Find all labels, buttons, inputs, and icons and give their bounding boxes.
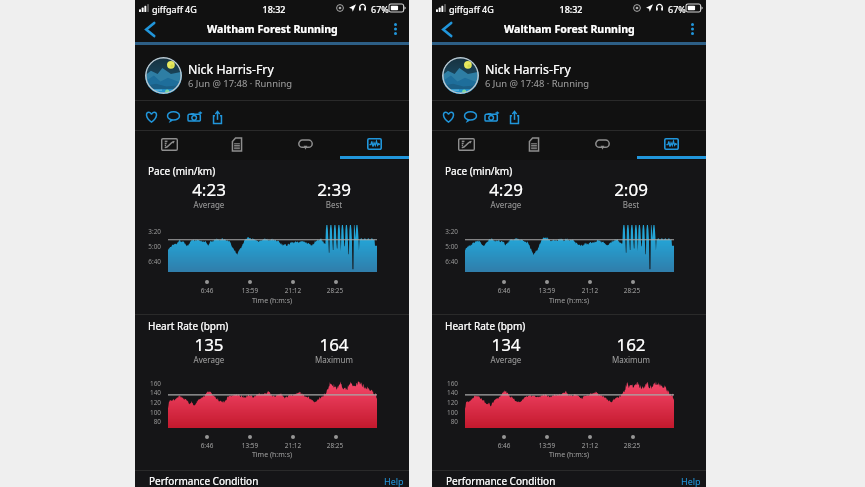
staticText: Average xyxy=(174,199,244,210)
staticText: Pace (min/km) xyxy=(445,164,513,178)
staticText: 6:46 xyxy=(490,441,518,450)
button[interactable]: Laps xyxy=(271,131,340,159)
staticText: Time (h:m:s) xyxy=(135,296,409,306)
button[interactable]: Like xyxy=(141,107,161,127)
button[interactable]: Performance Condition xyxy=(432,471,706,487)
staticText: 2:39 xyxy=(299,178,369,201)
staticText: 28:25 xyxy=(618,441,646,450)
staticText: 13:59 xyxy=(236,441,264,450)
staticText: 6:40 xyxy=(434,257,458,266)
button[interactable]: Share xyxy=(504,107,524,127)
staticText: Heart Rate (bpm) xyxy=(445,319,526,333)
staticText: 2:09 xyxy=(596,178,666,201)
staticText: Heart Rate (bpm) xyxy=(148,319,229,333)
staticText: Time (h:m:s) xyxy=(432,450,706,460)
button[interactable]: Charts xyxy=(340,131,409,159)
button[interactable]: Laps xyxy=(568,131,637,159)
button[interactable]: More options xyxy=(385,19,405,39)
button[interactable]: Comment xyxy=(163,107,183,127)
staticText: 4:23 xyxy=(174,178,244,201)
button[interactable]: Share xyxy=(207,107,227,127)
staticText: Nick Harris-Fry xyxy=(485,61,571,78)
button[interactable]: Map xyxy=(135,131,203,159)
staticText: 3:20 xyxy=(434,227,458,236)
button[interactable]: Like xyxy=(438,107,458,127)
button[interactable]: Details xyxy=(500,131,568,159)
staticText: 21:12 xyxy=(576,441,604,450)
staticText: 100 xyxy=(137,408,161,417)
staticText: 140 xyxy=(434,388,458,397)
staticText: Best xyxy=(596,199,666,210)
staticText: Best xyxy=(299,199,369,210)
staticText: Average xyxy=(174,354,244,365)
staticText: 18:32 xyxy=(434,3,708,15)
staticText: Waltham Forest Running xyxy=(504,22,635,36)
staticText: 18:32 xyxy=(137,3,411,15)
staticText: 6:46 xyxy=(193,441,221,450)
staticText: Help xyxy=(681,475,701,487)
staticText: 6:46 xyxy=(490,286,518,295)
staticText: 160 xyxy=(137,379,161,388)
staticText: Maximum xyxy=(596,354,666,365)
staticText: 28:25 xyxy=(321,286,349,295)
button[interactable]: More options xyxy=(682,19,702,39)
staticText: 6 Jun @ 17:48 · Running xyxy=(485,77,589,90)
staticText: 160 xyxy=(434,379,458,388)
staticText: 67% xyxy=(371,3,389,15)
button[interactable]: Back xyxy=(138,17,162,41)
staticText: 13:59 xyxy=(533,286,561,295)
staticText: 28:25 xyxy=(321,441,349,450)
staticText: Help xyxy=(384,475,404,487)
staticText: 134 xyxy=(471,333,541,356)
staticText: 80 xyxy=(434,417,458,426)
staticText: 3:20 xyxy=(137,227,161,236)
staticText: 67% xyxy=(668,3,686,15)
button[interactable]: Comment xyxy=(460,107,480,127)
staticText: 5:00 xyxy=(434,242,458,251)
staticText: 4:29 xyxy=(471,178,541,201)
staticText: Average xyxy=(471,199,541,210)
staticText: 120 xyxy=(434,398,458,407)
staticText: 162 xyxy=(596,333,666,356)
staticText: Time (h:m:s) xyxy=(432,296,706,306)
button[interactable]: Back xyxy=(435,17,459,41)
staticText: giffgaff xyxy=(449,3,480,15)
staticText: 100 xyxy=(434,408,458,417)
staticText: 21:12 xyxy=(279,286,307,295)
staticText: 164 xyxy=(299,333,369,356)
button[interactable]: Add photo xyxy=(482,107,502,127)
staticText: Nick Harris-Fry xyxy=(188,61,274,78)
staticText: 120 xyxy=(137,398,161,407)
staticText: 135 xyxy=(174,333,244,356)
staticText: Maximum xyxy=(299,354,369,365)
staticText: Performance Condition xyxy=(446,474,556,487)
staticText: 28:25 xyxy=(618,286,646,295)
button[interactable]: Performance Condition xyxy=(135,471,409,487)
button[interactable]: Map xyxy=(432,131,500,159)
staticText: 140 xyxy=(137,388,161,397)
staticText: 6 Jun @ 17:48 · Running xyxy=(188,77,292,90)
staticText: 21:12 xyxy=(279,441,307,450)
button[interactable]: Details xyxy=(203,131,271,159)
staticText: giffgaff xyxy=(152,3,183,15)
staticText: 4G xyxy=(482,3,494,15)
staticText: 6:40 xyxy=(137,257,161,266)
staticText: Performance Condition xyxy=(149,474,259,487)
staticText: 6:46 xyxy=(193,286,221,295)
staticText: 80 xyxy=(137,417,161,426)
staticText: Waltham Forest Running xyxy=(207,22,338,36)
staticText: 4G xyxy=(185,3,197,15)
staticText: 21:12 xyxy=(576,286,604,295)
button[interactable]: Add photo xyxy=(185,107,205,127)
staticText: Average xyxy=(471,354,541,365)
button[interactable]: Charts xyxy=(637,131,706,159)
staticText: Time (h:m:s) xyxy=(135,450,409,460)
staticText: 13:59 xyxy=(236,286,264,295)
staticText: 5:00 xyxy=(137,242,161,251)
staticText: 13:59 xyxy=(533,441,561,450)
staticText: Pace (min/km) xyxy=(148,164,216,178)
